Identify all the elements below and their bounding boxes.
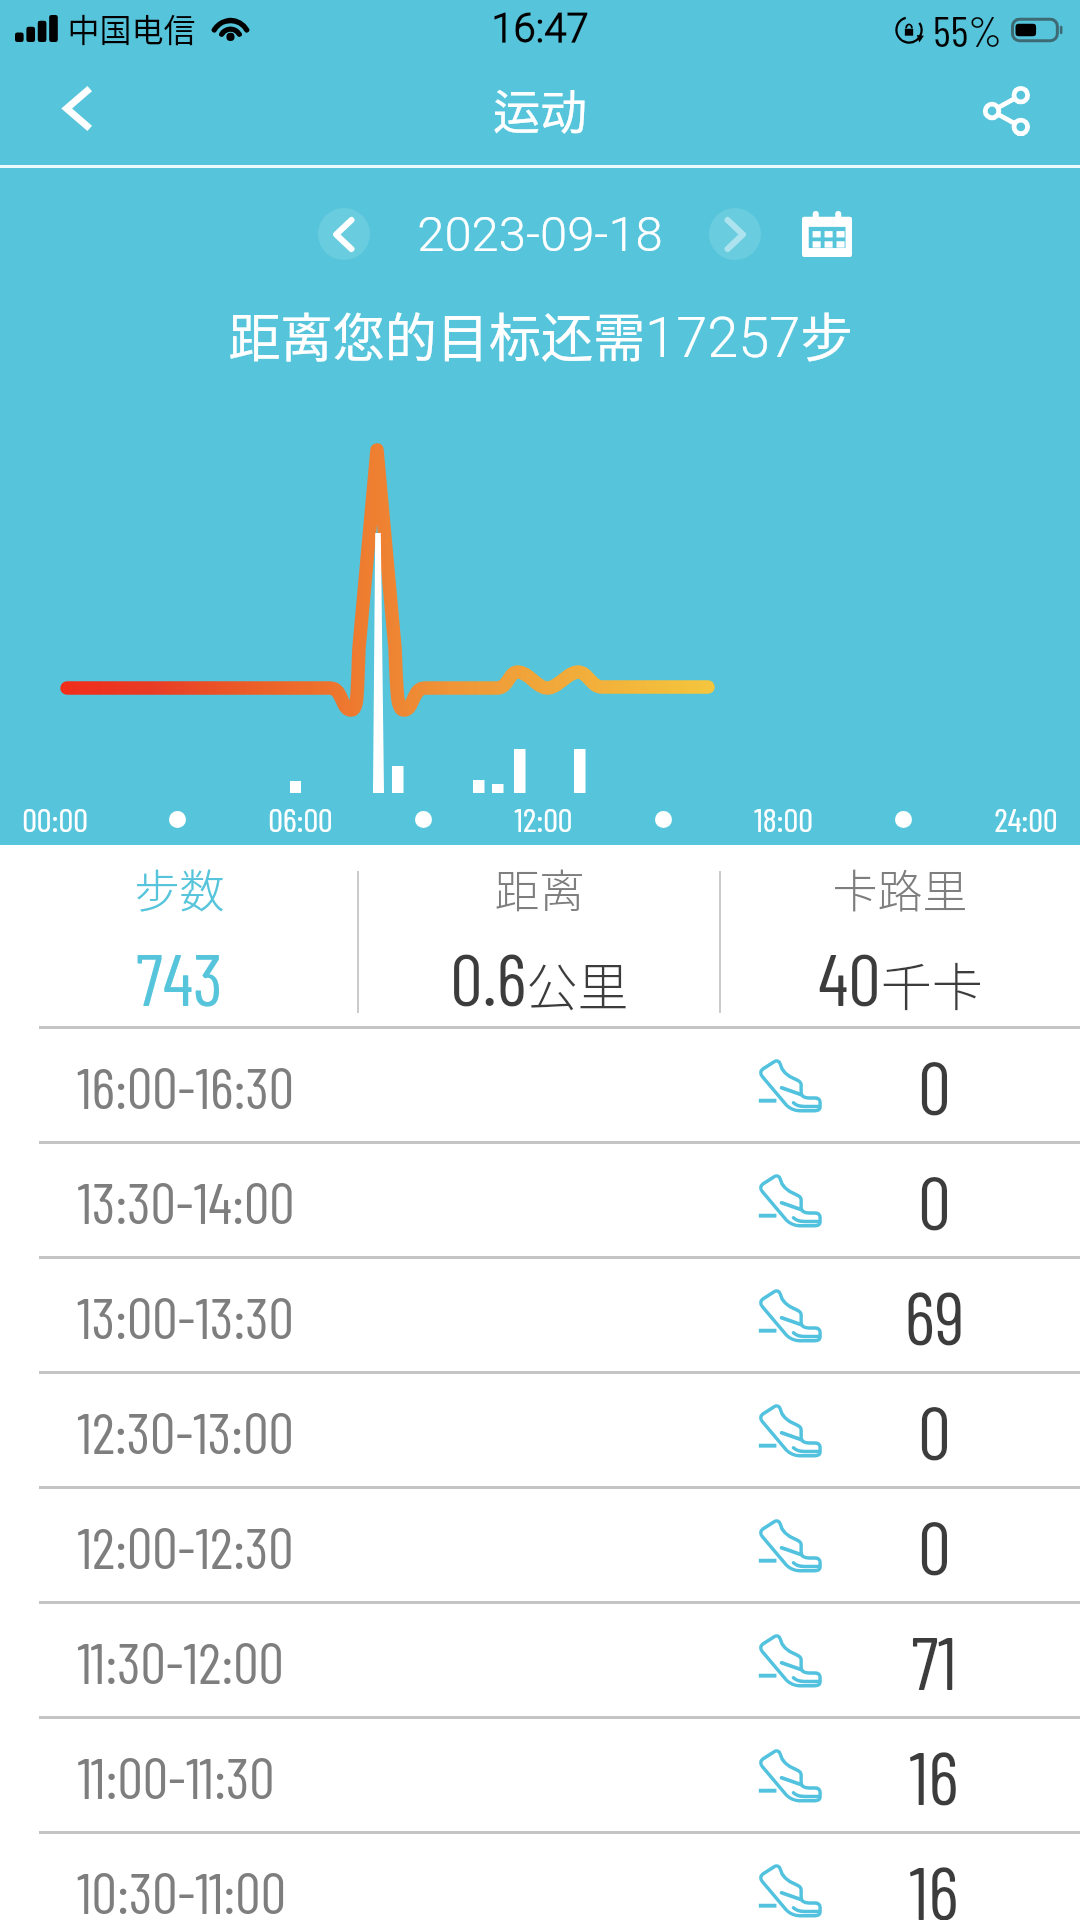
staticText: 0.6公里 — [450, 933, 629, 1021]
staticText: 12:00 — [514, 799, 573, 839]
button[interactable]: Previous day — [318, 208, 370, 260]
staticText: 12:00-12:30 — [77, 1512, 294, 1580]
staticText: 10:30-11:00 — [77, 1857, 286, 1920]
button[interactable]: Share — [944, 60, 1080, 167]
staticText: 06:00 — [268, 799, 333, 839]
staticText: 0 — [918, 1501, 951, 1590]
staticText: 13:30-14:00 — [77, 1167, 295, 1235]
staticText: 距离您的目标还需17257步 — [228, 297, 853, 372]
button[interactable]: Pick date — [789, 203, 865, 265]
button[interactable]: 11:00-11:30 — [0, 1719, 1080, 1831]
staticText: 运动 — [493, 74, 587, 142]
button[interactable]: 步数 — [0, 848, 358, 1029]
button[interactable]: 12:30-13:00 — [0, 1374, 1080, 1486]
staticText: 40千卡 — [818, 933, 983, 1021]
button[interactable]: 16:00-16:30 — [0, 1029, 1080, 1141]
staticText: 743 — [136, 933, 223, 1021]
staticText: 16 — [909, 1846, 959, 1920]
button[interactable]: Back — [0, 60, 156, 167]
button[interactable]: 11:30-12:00 — [0, 1604, 1080, 1716]
button[interactable]: 13:30-14:00 — [0, 1144, 1080, 1256]
staticText: 55% — [933, 4, 1002, 56]
button[interactable]: 12:00-12:30 — [0, 1489, 1080, 1601]
staticText: 16 — [909, 1731, 959, 1820]
button[interactable]: 10:30-11:00 — [0, 1834, 1080, 1920]
staticText: 16:00-16:30 — [77, 1052, 294, 1120]
staticText: 71 — [911, 1616, 957, 1705]
staticText: 卡路里 — [832, 856, 968, 921]
staticText: 步数 — [134, 856, 225, 921]
staticText: 11:30-12:00 — [77, 1627, 284, 1695]
staticText: 距离 — [494, 856, 585, 921]
button[interactable]: 卡路里 — [720, 848, 1080, 1029]
staticText: 0 — [918, 1041, 951, 1130]
staticText: 18:00 — [754, 799, 813, 839]
button[interactable]: Next day — [709, 208, 761, 260]
staticText: 11:00-11:30 — [77, 1742, 275, 1810]
staticText: 13:00-13:30 — [77, 1282, 294, 1350]
staticText: 12:30-13:00 — [77, 1397, 294, 1465]
button[interactable]: 距离 — [358, 848, 720, 1029]
staticText: 69 — [904, 1271, 965, 1360]
staticText: 中国电信 — [67, 5, 196, 51]
staticText: 2023-09-18 — [417, 206, 663, 263]
staticText: 00:00 — [22, 799, 88, 839]
staticText: 0 — [918, 1156, 951, 1245]
button[interactable]: 13:00-13:30 — [0, 1259, 1080, 1371]
staticText: 0 — [918, 1386, 951, 1475]
staticText: 24:00 — [994, 799, 1058, 839]
staticText: 16:47 — [491, 5, 589, 52]
